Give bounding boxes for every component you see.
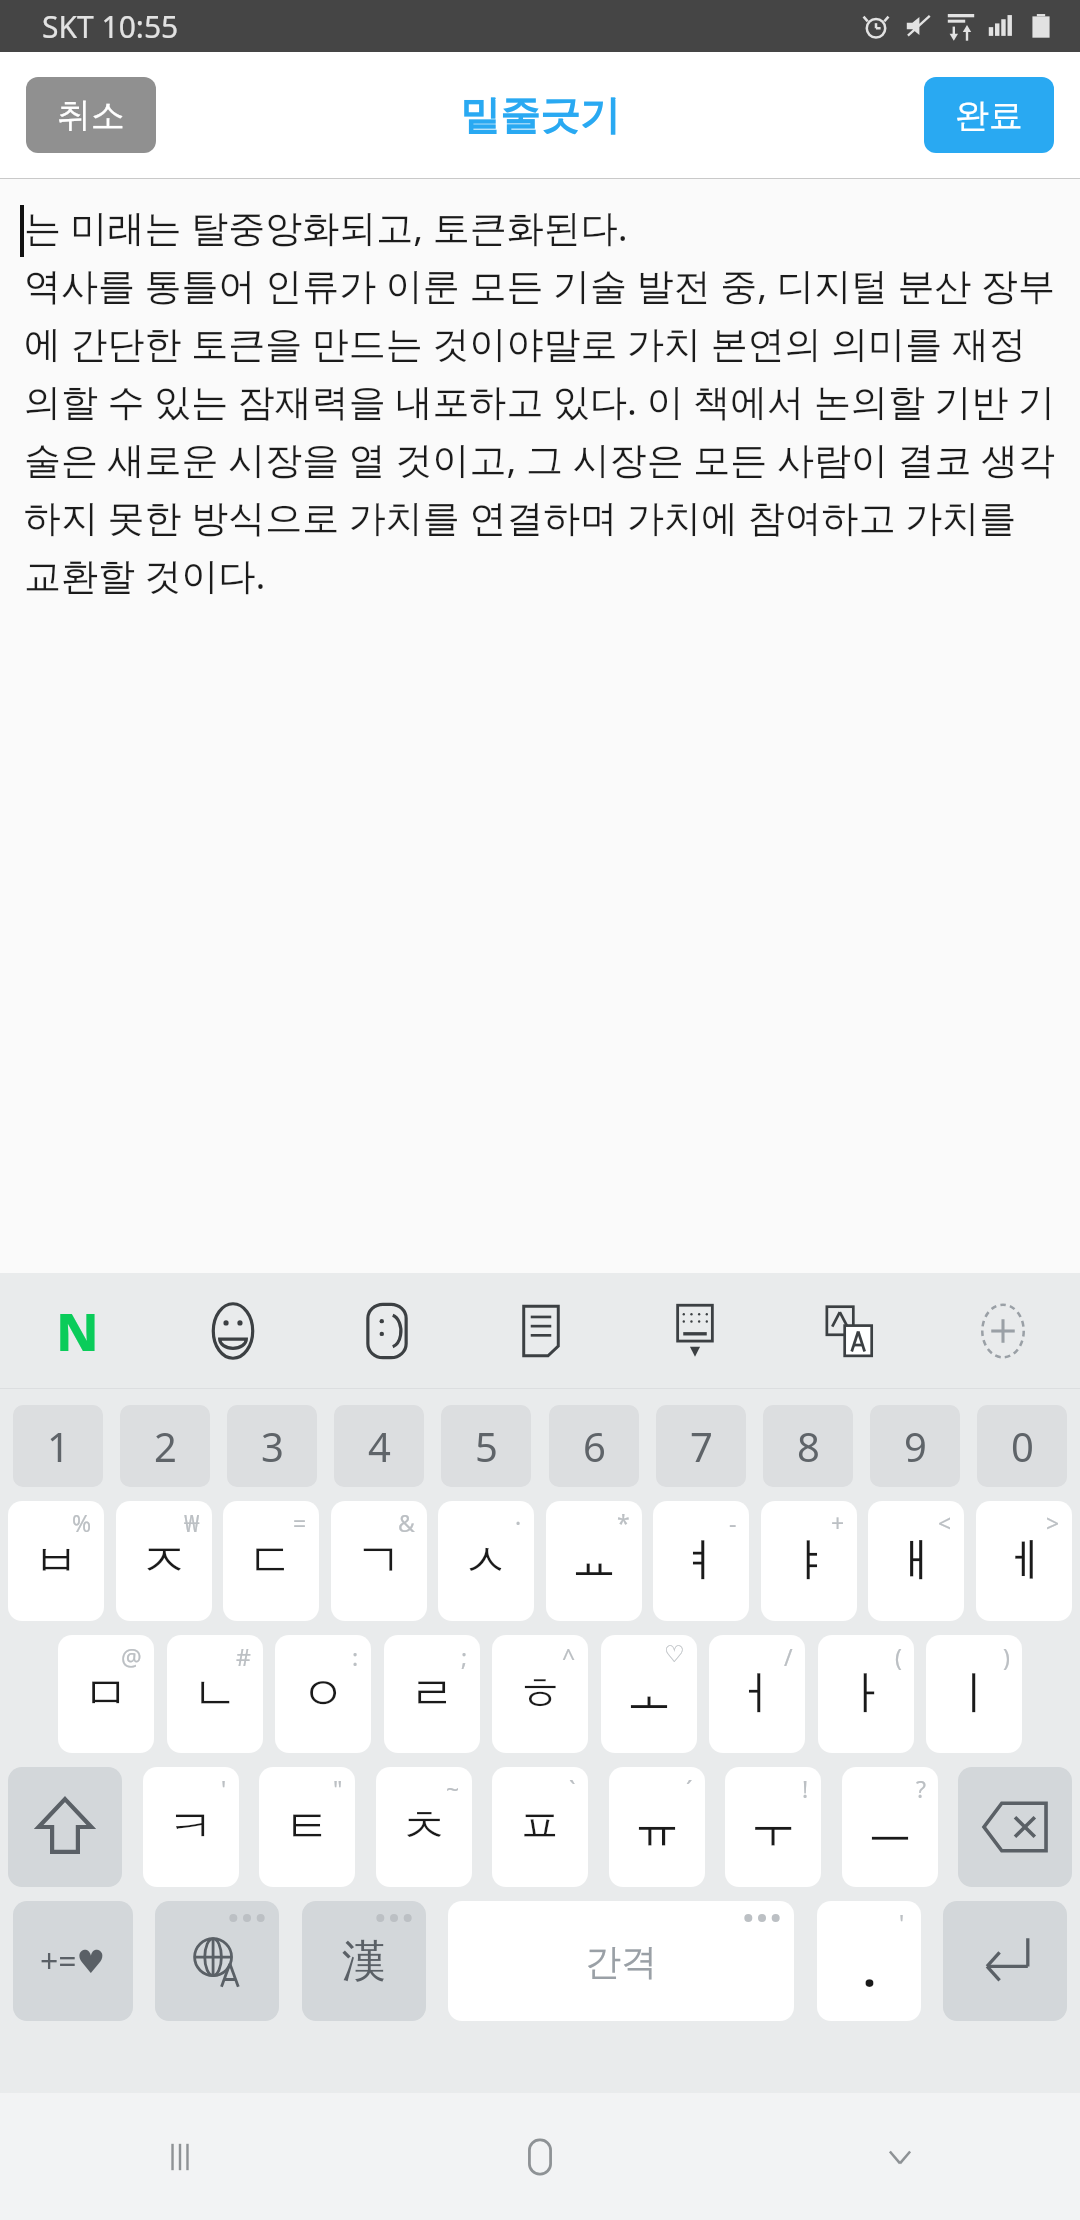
button[interactable]: 0 xyxy=(977,1405,1067,1487)
staticText: 취소 xyxy=(57,94,125,137)
button[interactable]: # xyxy=(167,1635,263,1753)
button[interactable]: ) xyxy=(926,1635,1022,1753)
button[interactable]: Hanja xyxy=(302,1901,426,2021)
staticText: ㅌ xyxy=(284,1798,330,1856)
staticText: 2 xyxy=(154,1419,177,1473)
staticText: ㅅ xyxy=(463,1532,509,1590)
button[interactable]: ^ xyxy=(492,1635,588,1753)
button[interactable]: ? xyxy=(842,1767,938,1887)
staticText: 7 xyxy=(690,1419,713,1473)
button[interactable]: Shift xyxy=(8,1767,122,1887)
button[interactable]: 2 xyxy=(120,1405,210,1487)
staticText: ㅑ xyxy=(786,1532,832,1590)
button[interactable]: Naver xyxy=(0,1273,155,1388)
button[interactable]: 7 xyxy=(656,1405,746,1487)
button[interactable]: Enter xyxy=(943,1901,1067,2021)
staticText: ㅈ xyxy=(141,1532,187,1590)
staticText: * xyxy=(617,1507,630,1538)
staticText: ㅠ xyxy=(634,1798,680,1856)
button[interactable]: 간격 xyxy=(448,1901,794,2021)
button[interactable]: 8 xyxy=(763,1405,853,1487)
button[interactable]: Translate xyxy=(772,1273,926,1388)
button[interactable]: Recents xyxy=(0,2093,360,2220)
staticText: & xyxy=(398,1507,415,1538)
button[interactable]: = xyxy=(223,1501,319,1621)
button[interactable]: / xyxy=(709,1635,805,1753)
button[interactable]: More xyxy=(926,1273,1080,1388)
staticText: 5 xyxy=(475,1419,498,1473)
button[interactable]: 는 미래는 탈중앙화되고, 토큰화된다. 역사를 통틀어 인류가 이룬 모든 기… xyxy=(0,179,1080,1273)
button[interactable]: & xyxy=(331,1501,427,1621)
button[interactable]: 4 xyxy=(334,1405,424,1487)
staticText: ㅊ xyxy=(401,1798,447,1856)
staticText: 는 미래는 탈중앙화되고, 토큰화된다. 역사를 통틀어 인류가 이룬 모든 기… xyxy=(24,201,1058,600)
staticText: ㅔ xyxy=(1001,1532,1047,1590)
button[interactable]: 3 xyxy=(227,1405,317,1487)
staticText: ㄴ xyxy=(192,1665,238,1723)
staticText: 9 xyxy=(904,1419,927,1473)
button[interactable]: @ xyxy=(58,1635,154,1753)
staticText: ㅏ xyxy=(843,1665,889,1723)
button[interactable]: Home xyxy=(360,2093,720,2220)
button[interactable]: 6 xyxy=(549,1405,639,1487)
button[interactable]: > xyxy=(976,1501,1072,1621)
staticText: ` xyxy=(569,1773,576,1804)
button[interactable]: 완료 xyxy=(924,77,1054,153)
button[interactable]: : xyxy=(275,1635,371,1753)
button[interactable]: ; xyxy=(384,1635,480,1753)
staticText: + xyxy=(831,1507,845,1538)
staticText: ㅡ xyxy=(867,1798,913,1856)
button[interactable]: ' xyxy=(143,1767,239,1887)
staticText: ; xyxy=(461,1641,468,1672)
button[interactable]: ' xyxy=(817,1901,921,2021)
button[interactable]: % xyxy=(8,1501,104,1621)
button[interactable]: 5 xyxy=(441,1405,531,1487)
button[interactable]: 1 xyxy=(13,1405,103,1487)
button[interactable]: Emoticon xyxy=(310,1273,464,1388)
button[interactable]: ~ xyxy=(376,1767,472,1887)
staticText: ´ xyxy=(686,1773,693,1804)
staticText: ㅂ xyxy=(33,1532,79,1590)
staticText: . xyxy=(863,1938,876,2001)
staticText: SKT 10:55 xyxy=(42,6,179,47)
staticText: ㅓ xyxy=(734,1665,780,1723)
button[interactable]: Keyboard settings xyxy=(618,1273,772,1388)
staticText: > xyxy=(1046,1507,1060,1538)
staticText: < xyxy=(938,1507,952,1538)
button[interactable]: Emoji xyxy=(155,1273,310,1388)
staticText: : xyxy=(352,1641,359,1672)
staticText: # xyxy=(236,1641,251,1672)
button[interactable]: + xyxy=(761,1501,857,1621)
button[interactable]: ( xyxy=(818,1635,914,1753)
staticText: ㅕ xyxy=(678,1532,724,1590)
button[interactable]: Change language xyxy=(155,1901,279,2021)
button[interactable]: " xyxy=(259,1767,355,1887)
button[interactable]: ₩ xyxy=(116,1501,212,1621)
staticText: ' xyxy=(899,1907,905,1938)
staticText: ♡ xyxy=(664,1641,685,1668)
staticText: 6 xyxy=(583,1419,606,1473)
staticText: ㅁ xyxy=(83,1665,129,1723)
button[interactable]: 9 xyxy=(870,1405,960,1487)
button[interactable]: < xyxy=(868,1501,964,1621)
button[interactable]: Clipboard xyxy=(464,1273,618,1388)
button[interactable]: ´ xyxy=(609,1767,705,1887)
button[interactable]: 취소 xyxy=(26,77,156,153)
button[interactable]: Backspace xyxy=(958,1767,1072,1887)
staticText: 漢 xyxy=(342,1934,386,1989)
staticText: 완료 xyxy=(955,94,1023,137)
button[interactable]: ♡ xyxy=(601,1635,697,1753)
button[interactable]: * xyxy=(546,1501,642,1621)
staticText: ㅗ xyxy=(626,1665,672,1723)
staticText: ㅜ xyxy=(750,1798,796,1856)
button[interactable]: ! xyxy=(725,1767,821,1887)
button[interactable]: Hide keyboard xyxy=(720,2093,1080,2220)
button[interactable]: - xyxy=(653,1501,749,1621)
staticText: ~ xyxy=(446,1773,460,1804)
button[interactable]: ` xyxy=(492,1767,588,1887)
button[interactable]: · xyxy=(438,1501,534,1621)
staticText: 간격 xyxy=(585,1939,657,1984)
button[interactable]: Symbols xyxy=(13,1901,133,2021)
staticText: = xyxy=(293,1507,307,1538)
staticText: ? xyxy=(916,1773,926,1804)
